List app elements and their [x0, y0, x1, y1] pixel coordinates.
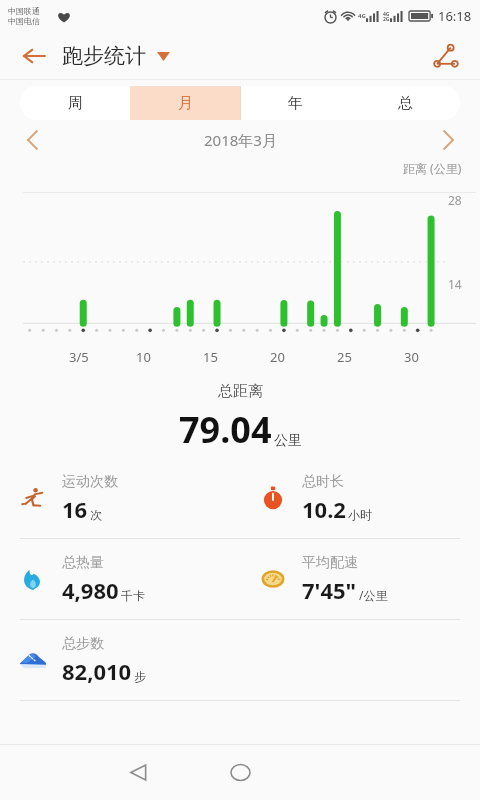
- staticText: 运动次数: [62, 473, 118, 491]
- button[interactable]: 平均配速: [240, 539, 480, 619]
- button[interactable]: Back: [14, 36, 54, 76]
- staticText: 月: [178, 94, 193, 113]
- staticText: 15: [203, 348, 480, 366]
- staticText: 平均配速: [302, 554, 358, 572]
- staticText: 10.2: [302, 494, 346, 524]
- staticText: 25: [337, 348, 480, 366]
- staticText: 步: [134, 669, 146, 684]
- staticText: 10: [136, 348, 480, 366]
- staticText: 28: [448, 192, 462, 208]
- staticText: 16:18: [438, 7, 472, 25]
- staticText: 7'45": [302, 575, 357, 605]
- staticText: 距离 (公里): [403, 160, 462, 176]
- staticText: 总距离: [218, 382, 263, 401]
- button[interactable]: 月: [130, 86, 240, 120]
- staticText: 2018年3月: [204, 130, 277, 150]
- button[interactable]: 运动次数: [0, 458, 240, 538]
- staticText: /公里: [359, 587, 388, 603]
- button[interactable]: 年: [240, 86, 350, 120]
- button[interactable]: Home: [216, 748, 264, 796]
- button[interactable]: Share: [424, 34, 468, 78]
- button[interactable]: 周: [20, 86, 130, 120]
- staticText: 82,010: [62, 656, 132, 686]
- staticText: 总: [398, 94, 413, 113]
- staticText: 千卡: [121, 588, 145, 603]
- button[interactable]: 总时长: [240, 458, 480, 538]
- staticText: 小时: [348, 507, 372, 522]
- staticText: 4,980: [62, 575, 119, 605]
- button[interactable]: Next month: [430, 122, 466, 158]
- staticText: 总热量: [62, 554, 104, 572]
- staticText: 年: [288, 94, 303, 113]
- staticText: 14: [448, 276, 462, 292]
- staticText: 中国联通: [8, 6, 40, 16]
- staticText: 中国电信: [8, 16, 40, 26]
- staticText: 周: [68, 94, 83, 113]
- staticText: 跑步统计: [62, 43, 146, 69]
- button[interactable]: 总步数: [0, 620, 240, 700]
- staticText: 4G 2G: [383, 11, 390, 22]
- button[interactable]: 总热量: [0, 539, 240, 619]
- button[interactable]: 总: [350, 86, 460, 120]
- button[interactable]: 跑步统计: [62, 43, 170, 69]
- button[interactable]: Previous month: [14, 122, 50, 158]
- staticText: 79.04: [179, 405, 272, 454]
- staticText: 总步数: [62, 635, 104, 653]
- staticText: 20: [270, 348, 480, 366]
- staticText: 3/5: [69, 348, 480, 366]
- button[interactable]: Back: [114, 748, 162, 796]
- staticText: 16: [62, 494, 88, 524]
- staticText: 次: [90, 507, 102, 522]
- staticText: 4G: [358, 12, 366, 20]
- staticText: 30: [404, 348, 480, 366]
- staticText: 公里: [274, 432, 302, 450]
- staticText: 总时长: [302, 473, 344, 491]
